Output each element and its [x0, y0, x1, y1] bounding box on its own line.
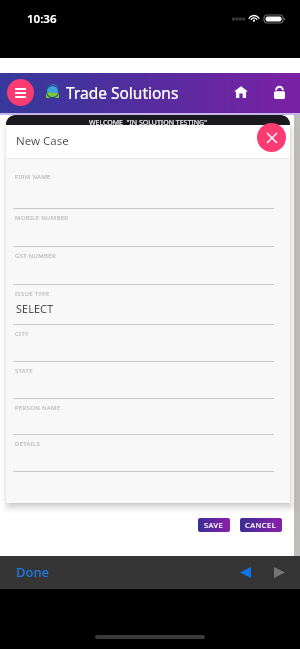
button[interactable]: Previous	[234, 563, 256, 581]
staticText: 10:36	[27, 11, 57, 27]
staticText: PERSON NAME	[15, 404, 61, 412]
button[interactable]: CANCEL	[240, 518, 282, 532]
staticText: CANCEL	[245, 520, 277, 530]
staticText: CITY	[15, 330, 29, 338]
button[interactable]: Home	[226, 77, 256, 107]
button[interactable]: Lock	[264, 77, 294, 107]
staticText: Trade Solutions	[66, 82, 179, 103]
button[interactable]: Close	[257, 123, 286, 152]
staticText: DETAILS	[15, 440, 41, 448]
staticText: WELCOME "IN SOLUTION TESTING"	[89, 118, 207, 125]
button[interactable]: Menu	[7, 79, 34, 106]
button[interactable]: Done	[10, 559, 56, 585]
staticText: ISSUE TYPE	[15, 290, 50, 298]
staticText: FIRM NAME	[15, 173, 51, 181]
staticText: SAVE	[204, 520, 224, 530]
button[interactable]: SAVE	[198, 518, 230, 532]
staticText: MOBILE NUMBER	[15, 214, 69, 222]
staticText: STATE	[15, 367, 33, 375]
button[interactable]: Next	[268, 563, 290, 581]
staticText: SELECT	[16, 301, 54, 316]
staticText: GST NUMBER	[15, 252, 56, 260]
staticText: Done	[16, 563, 50, 581]
staticText: New Case	[16, 133, 69, 149]
